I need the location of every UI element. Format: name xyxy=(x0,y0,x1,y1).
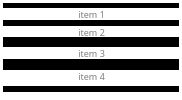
staticText: item 3 xyxy=(78,47,105,59)
button[interactable]: item 1 xyxy=(0,8,182,20)
button[interactable]: item 2 xyxy=(0,26,182,37)
staticText: item 2 xyxy=(78,26,105,37)
staticText: item 1 xyxy=(78,8,105,20)
staticText: item 4 xyxy=(78,70,105,82)
button[interactable]: item 3 xyxy=(0,47,182,59)
button[interactable]: item 4 xyxy=(0,70,182,82)
